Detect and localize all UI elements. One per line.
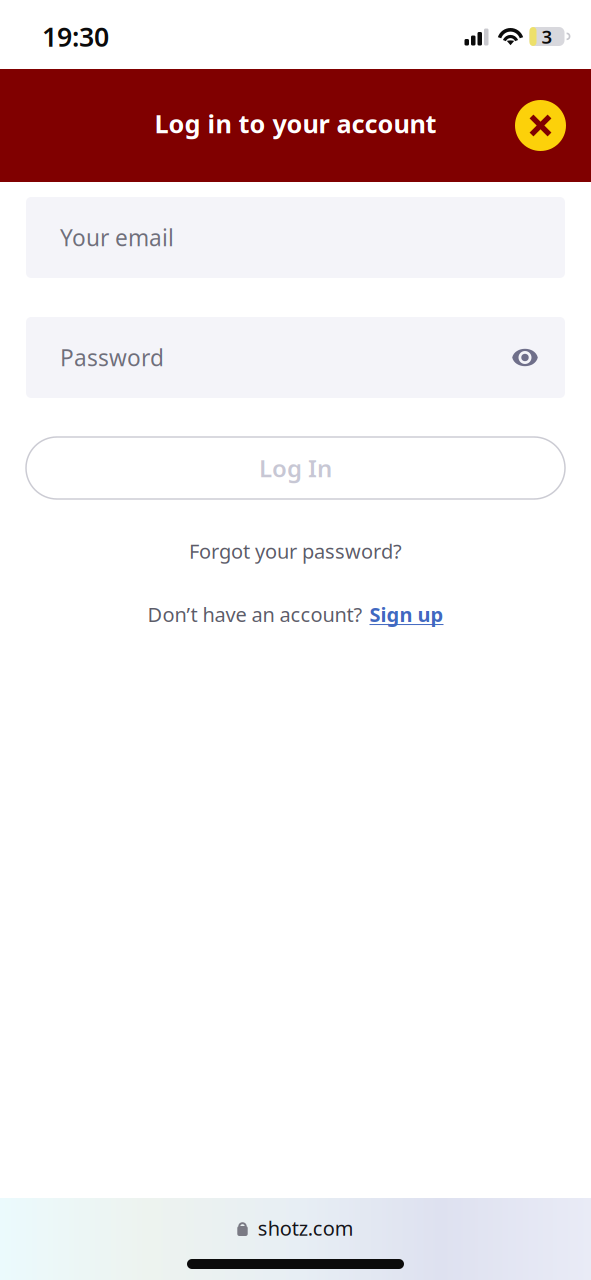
staticText: 3: [541, 24, 552, 49]
staticText: Log In: [259, 452, 332, 484]
staticText: Log in to your account: [154, 107, 436, 140]
button[interactable]: Close: [515, 100, 566, 151]
staticText: Password: [60, 342, 164, 372]
staticText: Forgot your password?: [189, 538, 402, 564]
staticText: shotz.com: [258, 1215, 354, 1241]
button[interactable]: Sign up: [369, 601, 443, 628]
staticText: Sign up: [369, 601, 443, 628]
staticText: Don’t have an account?: [147, 601, 362, 628]
button[interactable]: Forgot your password?: [0, 534, 591, 568]
button[interactable]: Log In: [26, 437, 565, 499]
staticText: 19:30: [42, 19, 109, 54]
button[interactable]: Your email: [26, 197, 565, 278]
button[interactable]: shotz.com: [0, 1198, 591, 1258]
button[interactable]: Password: [26, 317, 565, 398]
staticText: Your email: [60, 222, 174, 252]
